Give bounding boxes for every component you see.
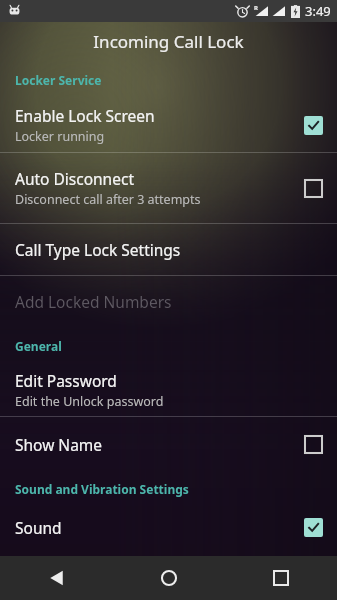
staticText: Edit the Unlock password <box>15 393 164 410</box>
button[interactable]: Show Name <box>0 417 337 471</box>
staticText: Sound <box>15 517 62 538</box>
button[interactable]: Back <box>0 556 113 600</box>
staticText: 3:49 <box>305 2 331 20</box>
staticText: Disconnect call after 3 attempts <box>15 191 201 208</box>
button[interactable]: Checked <box>304 518 323 537</box>
button[interactable]: Checked <box>304 116 323 135</box>
staticText: Add Locked Numbers <box>15 291 172 312</box>
button[interactable]: Recent apps <box>225 556 337 600</box>
staticText: Show Name <box>15 434 103 455</box>
button[interactable]: Add Locked Numbers <box>0 276 337 326</box>
button[interactable]: Home <box>113 556 225 600</box>
staticText: Locker running <box>15 128 105 145</box>
button[interactable]: Sound <box>0 507 337 547</box>
button[interactable]: Edit Password <box>0 364 337 416</box>
button[interactable]: Unchecked <box>304 179 323 198</box>
button[interactable]: Auto Disconnect <box>0 153 337 223</box>
staticText: Auto Disconnect <box>15 168 134 189</box>
staticText: Incoming Call Lock <box>93 30 244 53</box>
staticText: Edit Password <box>15 370 117 391</box>
staticText: Call Type Lock Settings <box>15 239 181 260</box>
button[interactable]: Call Type Lock Settings <box>0 224 337 275</box>
button[interactable]: Unchecked <box>304 435 323 454</box>
staticText: Enable Lock Screen <box>15 105 155 126</box>
staticText: Locker Service <box>15 72 102 88</box>
staticText: R <box>254 4 258 12</box>
button[interactable]: Enable Lock Screen <box>0 98 337 152</box>
staticText: General <box>15 338 62 354</box>
staticText: Sound and Vibration Settings <box>15 481 189 497</box>
